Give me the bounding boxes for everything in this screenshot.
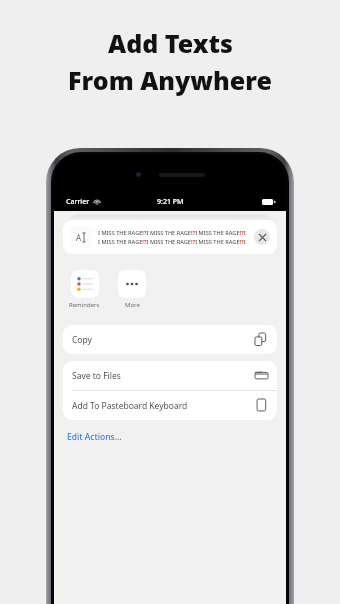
staticText: A bbox=[76, 232, 82, 243]
button[interactable]: Edit Actions… bbox=[63, 429, 126, 445]
staticText: I MISS THE RAGE⁉I MISS THE RAGE⁉I MISS T… bbox=[98, 229, 250, 237]
button[interactable]: Save to Files bbox=[63, 361, 277, 390]
staticText: Save to Files bbox=[72, 370, 255, 382]
staticText: More bbox=[125, 301, 140, 309]
staticText: Copy bbox=[72, 334, 255, 346]
staticText: Reminders bbox=[69, 301, 100, 309]
staticText: 9:21 PM bbox=[157, 197, 184, 207]
button[interactable]: Add To Pasteboard Keyboard bbox=[63, 391, 277, 420]
staticText: I MISS THE RAGE⁉I MISS THE RAGE⁉I MISS T… bbox=[98, 238, 250, 246]
staticText: Carrier bbox=[66, 197, 90, 207]
button[interactable]: Close bbox=[254, 229, 270, 245]
button[interactable]: More bbox=[116, 268, 148, 311]
staticText: Add To Pasteboard Keyboard bbox=[72, 400, 255, 412]
button[interactable]: Reminders bbox=[67, 268, 102, 311]
staticText: Add Texts bbox=[108, 26, 233, 60]
button[interactable]: Copy bbox=[63, 325, 277, 354]
staticText: Edit Actions… bbox=[67, 431, 122, 443]
button[interactable]: A bbox=[63, 220, 277, 254]
staticText: From Anywhere bbox=[68, 63, 272, 97]
